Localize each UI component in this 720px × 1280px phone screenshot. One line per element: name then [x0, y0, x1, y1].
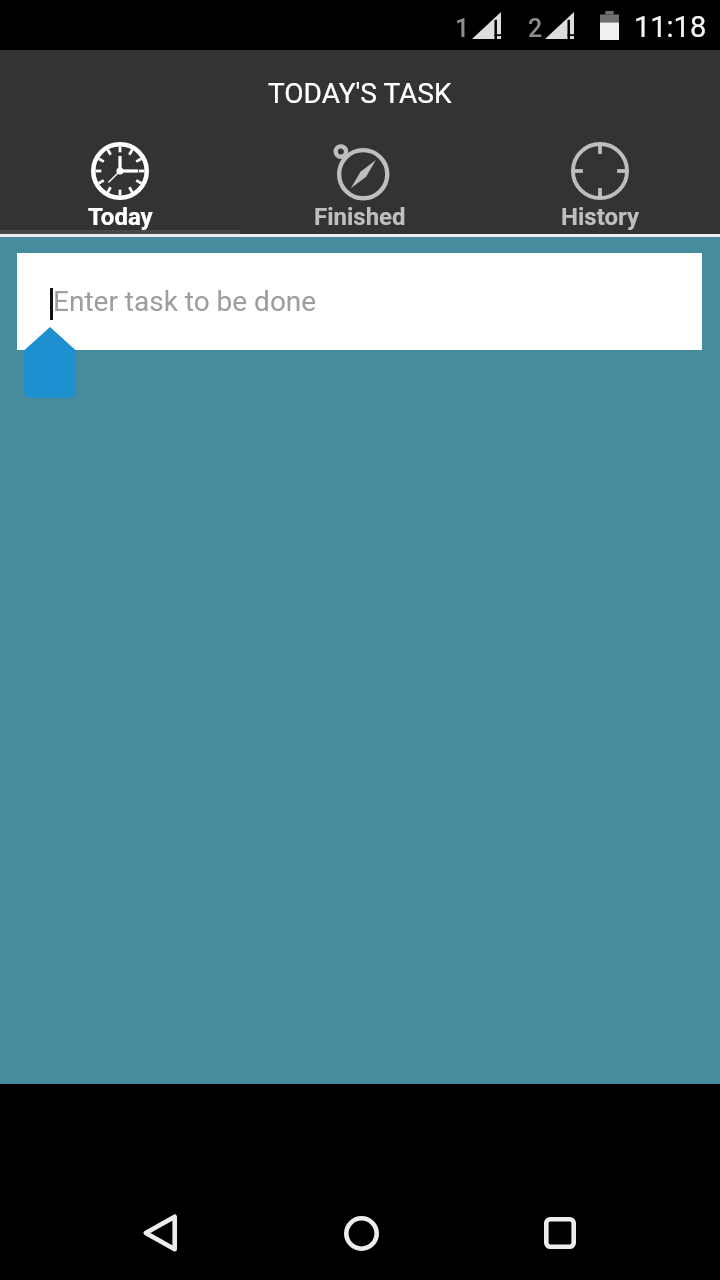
staticText: Enter task to be done	[53, 285, 317, 318]
button[interactable]: History	[480, 133, 720, 230]
staticText: 2	[528, 14, 543, 43]
other: Text selection handle	[24, 327, 76, 398]
button[interactable]: Finished	[240, 133, 480, 230]
staticText: 11:18	[634, 10, 707, 44]
button[interactable]: Today	[0, 133, 240, 230]
staticText: 1	[455, 14, 470, 43]
button[interactable]: Back	[120, 1203, 200, 1263]
staticText: History	[561, 203, 640, 230]
button[interactable]: Home	[321, 1203, 401, 1263]
staticText: Today	[88, 203, 153, 230]
staticText: Finished	[314, 203, 406, 230]
button[interactable]: Recents	[520, 1203, 600, 1263]
staticText: TODAY'S TASK	[268, 77, 452, 110]
button[interactable]: Enter task to be done	[17, 253, 702, 350]
